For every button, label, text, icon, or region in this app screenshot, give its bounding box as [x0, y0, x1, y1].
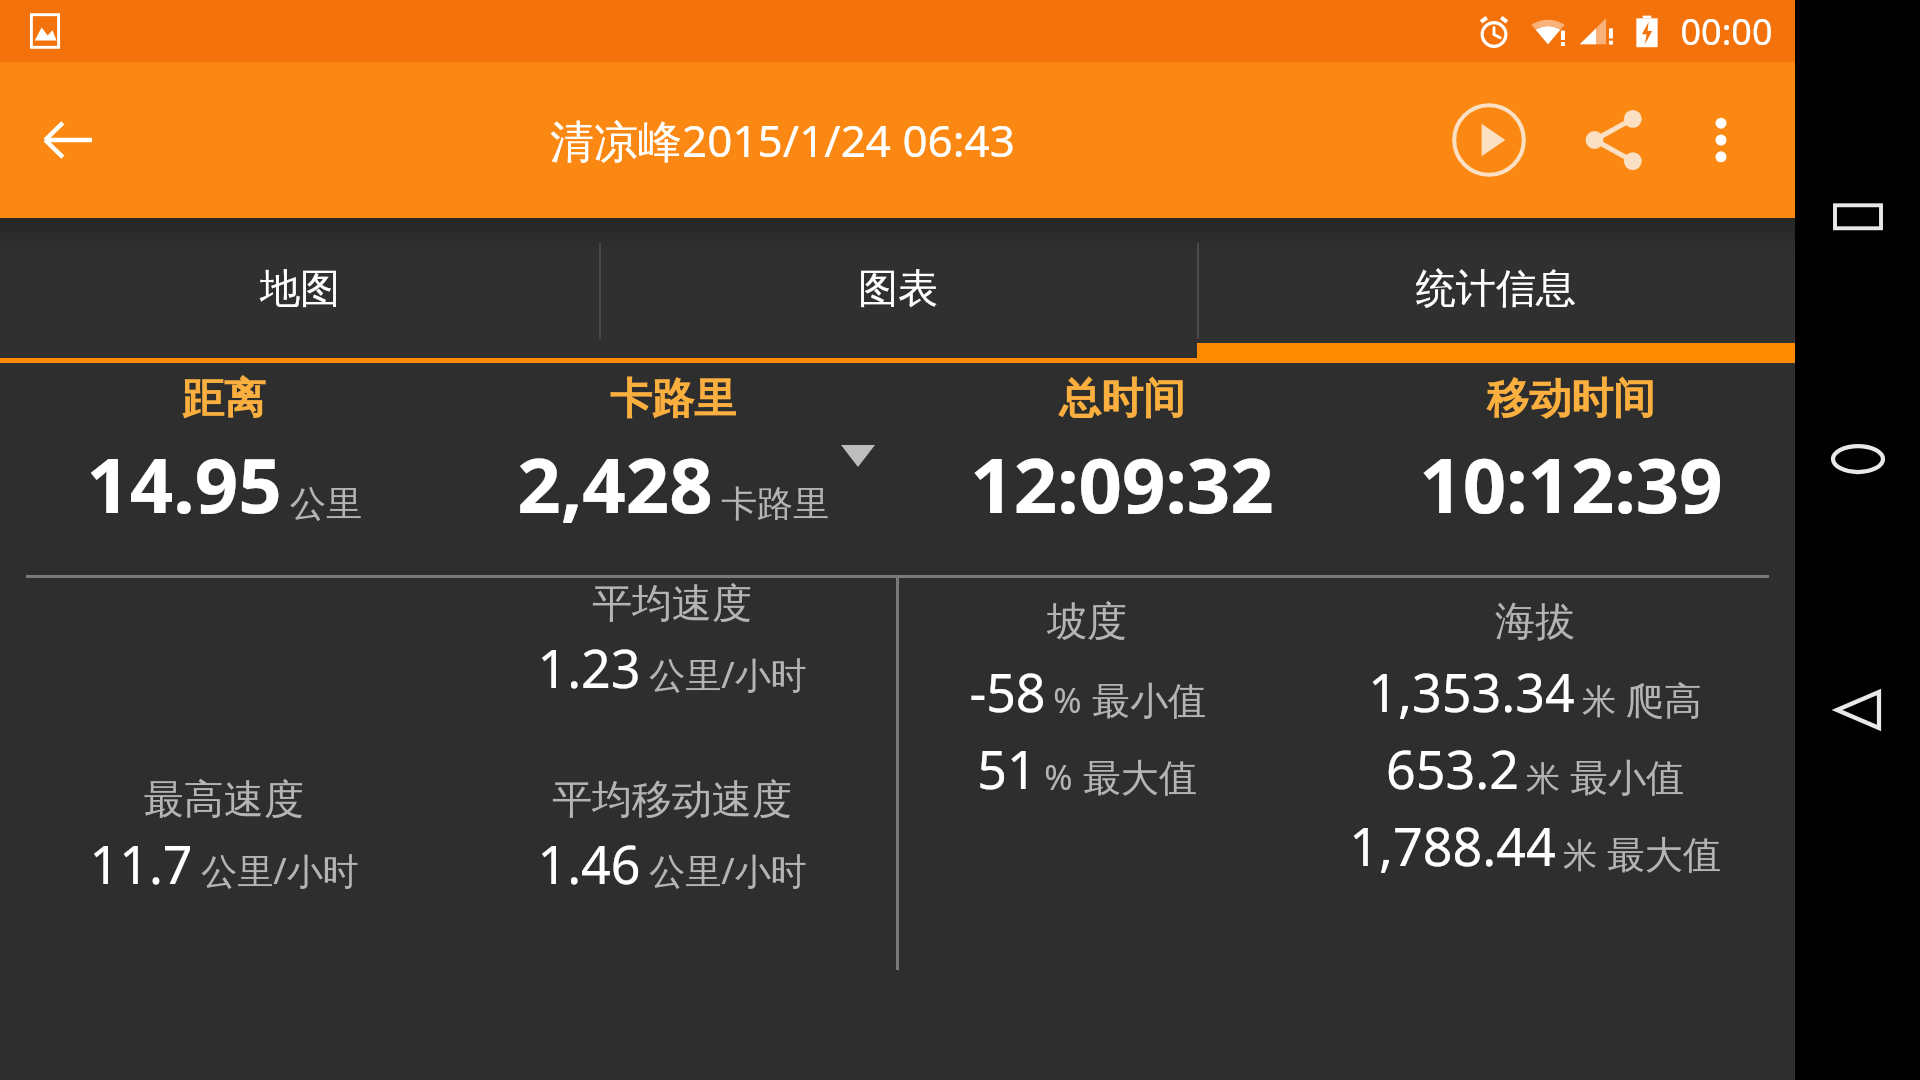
staticText: 公里 [290, 481, 362, 526]
staticText: 00:00 [1680, 7, 1773, 56]
staticText: 总时间 [1059, 373, 1185, 426]
staticText: 公里/小时 [201, 846, 359, 895]
staticText: 1,788.44 [1349, 810, 1556, 881]
button[interactable]: 最高速度 [0, 774, 448, 899]
staticText: 最小值 [1092, 677, 1206, 725]
staticText: 坡度 [1047, 596, 1127, 646]
staticText: % [1044, 754, 1073, 800]
staticText: 移动时间 [1487, 373, 1655, 426]
staticText: 爬高 [1626, 677, 1702, 725]
button[interactable]: Play [1437, 88, 1541, 192]
staticText: 地图 [260, 263, 340, 313]
staticText: 米 [1563, 834, 1597, 877]
button[interactable]: 图表 [599, 218, 1197, 363]
staticText: 平均速度 [592, 578, 752, 628]
staticText: % [1053, 677, 1082, 723]
staticText: 最大值 [1083, 754, 1197, 802]
staticText: 卡路里 [610, 373, 736, 426]
button[interactable]: Back [1808, 660, 1908, 760]
staticText: -58 [969, 656, 1046, 727]
button[interactable]: 地图 [0, 218, 599, 363]
button[interactable]: Recents [1808, 170, 1908, 270]
staticText: 最小值 [1570, 754, 1684, 802]
staticText: 12:09:32 [970, 432, 1274, 536]
staticText: 51 [977, 733, 1037, 804]
staticText: 距离 [182, 373, 266, 426]
button[interactable]: 统计信息 [1197, 218, 1795, 363]
button[interactable]: 卡路里 [448, 363, 897, 575]
button[interactable]: Share [1561, 88, 1665, 192]
staticText: 公里/小时 [649, 846, 807, 895]
button[interactable]: Back [26, 98, 110, 182]
staticText: 653.2 [1386, 733, 1519, 804]
staticText: 卡路里 [721, 481, 829, 526]
staticText: 图表 [858, 263, 938, 313]
button[interactable]: 平均速度 [448, 578, 896, 703]
staticText: 11.7 [89, 828, 193, 899]
staticText: 1.46 [537, 828, 641, 899]
staticText: 14.95 [86, 432, 282, 536]
button[interactable]: Home [1808, 410, 1908, 510]
staticText: 1.23 [537, 632, 641, 703]
staticText: 最大值 [1607, 831, 1721, 879]
staticText: 米 [1526, 757, 1560, 800]
staticText: 2,428 [517, 432, 713, 536]
staticText: 10:12:39 [1419, 432, 1723, 536]
staticText: 米 [1582, 680, 1616, 723]
staticText: 公里/小时 [649, 650, 807, 699]
button[interactable]: 总时间 [897, 363, 1346, 536]
staticText: 清凉峰2015/1/24 06:43 [128, 110, 1437, 170]
button[interactable]: More options [1673, 92, 1769, 188]
staticText: 海拔 [1495, 596, 1575, 646]
staticText: 1,353.34 [1368, 656, 1575, 727]
staticText: 统计信息 [1416, 263, 1576, 313]
button[interactable]: 移动时间 [1346, 363, 1795, 536]
staticText: 最高速度 [144, 774, 304, 824]
staticText: 平均移动速度 [552, 774, 792, 824]
button[interactable]: 平均移动速度 [448, 774, 896, 899]
button[interactable]: 距离 [0, 363, 448, 536]
